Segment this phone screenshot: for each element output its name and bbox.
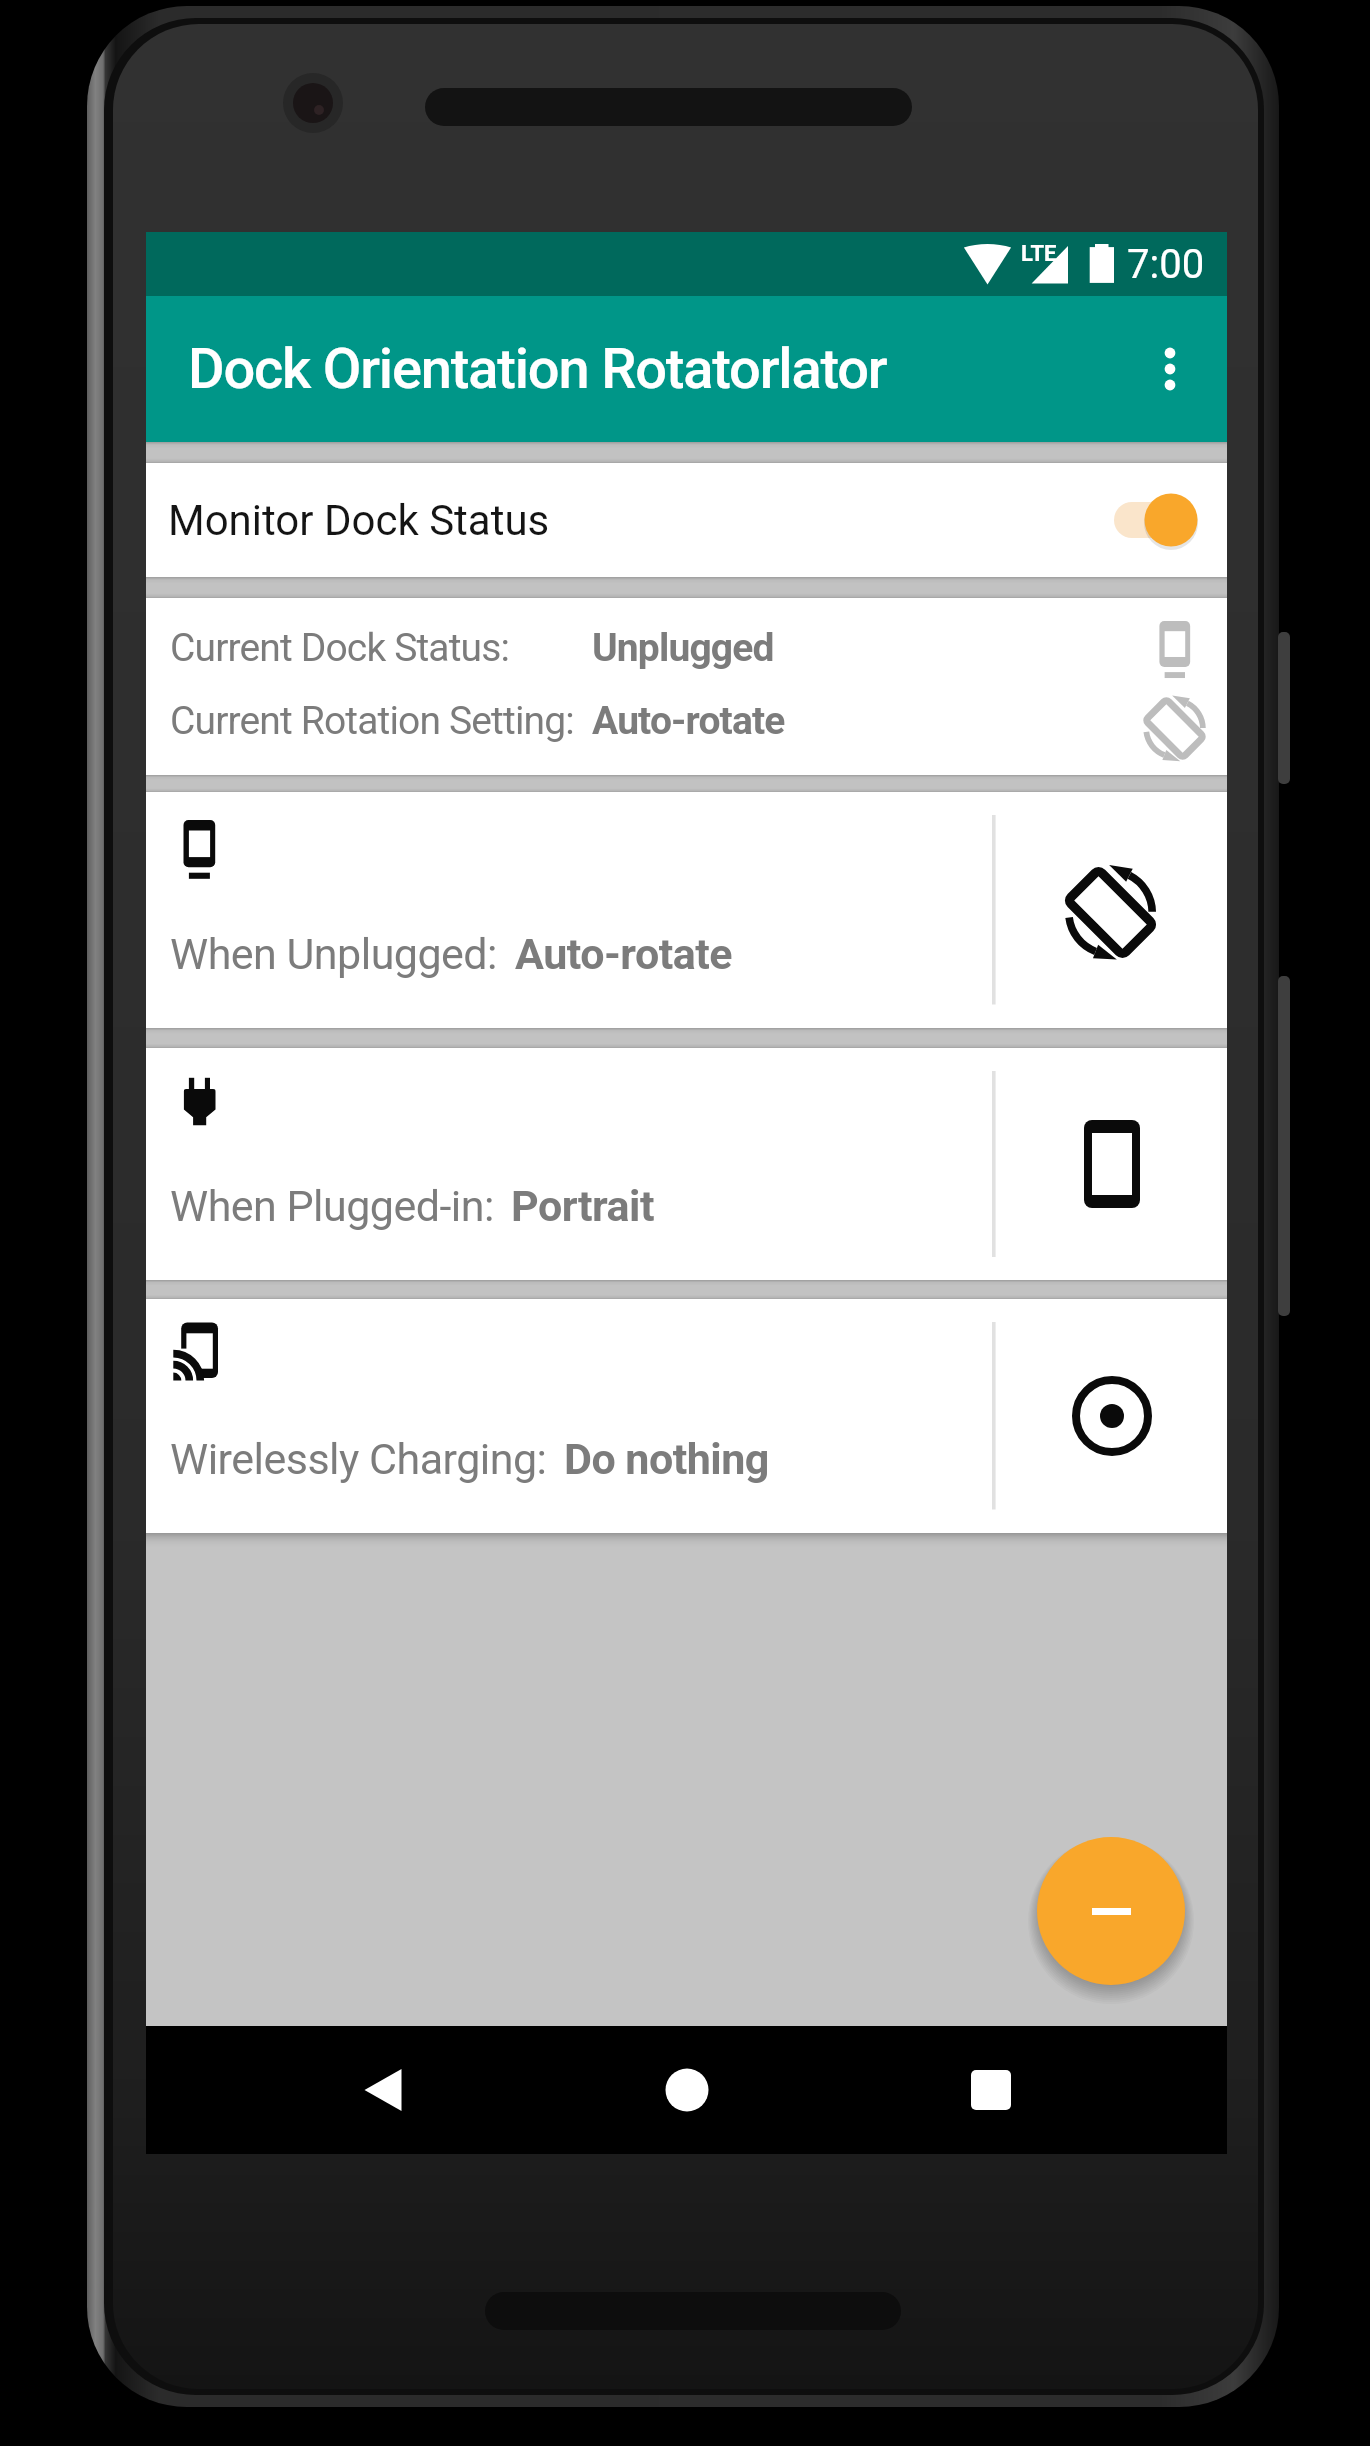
- button[interactable]: When Plugged-in:: [146, 1048, 1227, 1280]
- staticText: Current Dock Status:: [170, 625, 510, 671]
- staticText: Dock Orientation Rotatorlator: [188, 336, 887, 402]
- staticText: 7:00: [1127, 241, 1205, 288]
- staticText: When Plugged-in:: [170, 1181, 494, 1231]
- staticText: Do nothing: [564, 1434, 769, 1484]
- button[interactable]: More options: [1115, 314, 1225, 424]
- button[interactable]: When Unplugged:: [146, 792, 1227, 1028]
- button[interactable]: Recent apps: [915, 2026, 1067, 2154]
- staticText: When Unplugged:: [170, 929, 498, 979]
- staticText: Auto-rotate: [515, 929, 732, 979]
- button[interactable]: Monitor Dock Status: [146, 463, 1227, 577]
- staticText: Unplugged: [592, 625, 774, 671]
- staticText: Portrait: [511, 1181, 654, 1231]
- staticText: Monitor Dock Status: [168, 496, 550, 545]
- button[interactable]: Back: [307, 2026, 459, 2154]
- button[interactable]: [1114, 490, 1198, 550]
- button[interactable]: Wirelessly Charging:: [146, 1299, 1227, 1533]
- button[interactable]: Collapse menu: [1037, 1837, 1185, 1985]
- staticText: Auto-rotate: [592, 698, 785, 744]
- staticText: LTE: [1021, 241, 1057, 267]
- button[interactable]: Home: [611, 2026, 763, 2154]
- staticText: Wirelessly Charging:: [170, 1434, 547, 1484]
- staticText: Current Rotation Setting:: [170, 698, 574, 744]
